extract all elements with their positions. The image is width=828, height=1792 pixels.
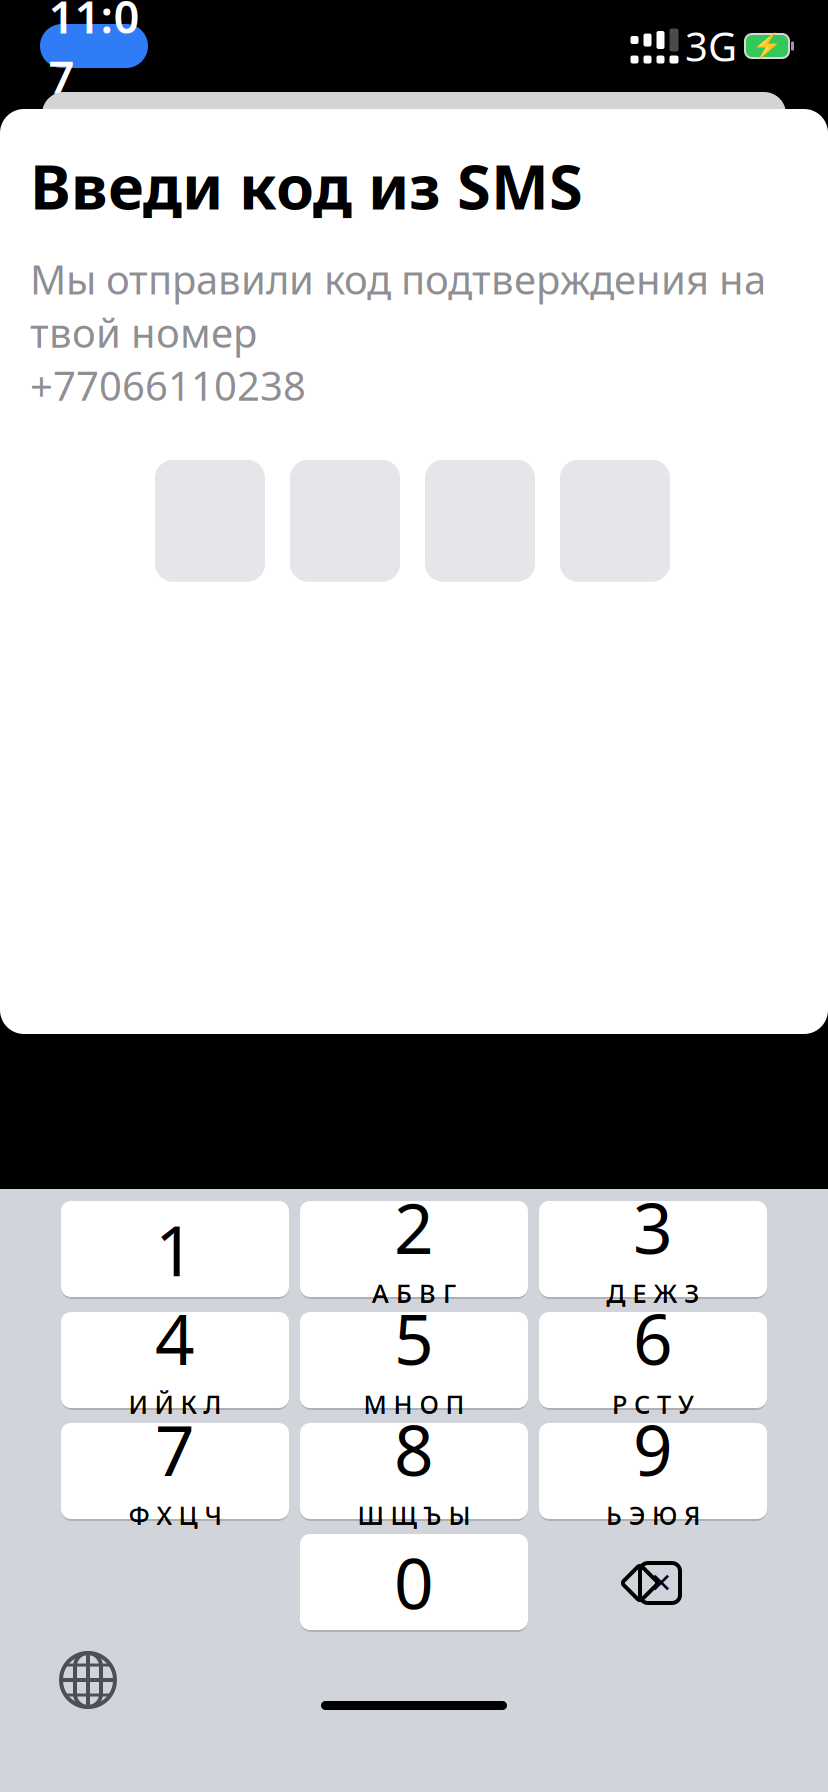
- staticText: М Н О П: [363, 1387, 464, 1421]
- staticText: 3: [633, 1181, 673, 1273]
- staticText: М Н О П: [363, 1387, 464, 1421]
- staticText: 3: [633, 1181, 673, 1273]
- staticText: 9: [633, 1403, 673, 1495]
- staticText: И Й К Л: [128, 1387, 221, 1421]
- staticText: 5: [394, 1292, 434, 1384]
- staticText: 2: [394, 1181, 434, 1273]
- button[interactable]: 6: [539, 1312, 767, 1410]
- button[interactable]: 0: [300, 1534, 528, 1632]
- staticText: 4: [155, 1292, 195, 1384]
- staticText: 5: [394, 1292, 434, 1384]
- staticText: 8: [394, 1403, 434, 1495]
- staticText: Ш Щ Ъ Ы: [357, 1498, 470, 1532]
- button[interactable]: Code digit: [290, 460, 400, 582]
- staticText: 4: [155, 1292, 195, 1384]
- button[interactable]: 1: [61, 1201, 289, 1299]
- button[interactable]: Delete: [539, 1534, 767, 1632]
- staticText: А Б В Г: [372, 1276, 456, 1310]
- staticText: Ь Э Ю Я: [606, 1498, 700, 1532]
- button[interactable]: 8: [300, 1423, 528, 1521]
- staticText: Ф Х Ц Ч: [128, 1498, 221, 1532]
- staticText: 9: [633, 1403, 673, 1495]
- staticText: Ш Щ Ъ Ы: [357, 1498, 470, 1532]
- staticText: ✕: [650, 1568, 672, 1598]
- button[interactable]: 9: [539, 1423, 767, 1521]
- staticText: Ф Х Ц Ч: [128, 1498, 221, 1532]
- button[interactable]: 3: [539, 1201, 767, 1299]
- staticText: Р С Т У: [612, 1387, 694, 1421]
- staticText: Ь Э Ю Я: [606, 1498, 700, 1532]
- staticText: ⚡: [752, 32, 782, 60]
- button[interactable]: Next keyboard: [40, 1632, 136, 1728]
- staticText: Р С Т У: [612, 1387, 694, 1421]
- staticText: 1: [155, 1203, 195, 1295]
- staticText: 7: [155, 1403, 195, 1495]
- staticText: Д Е Ж З: [606, 1276, 699, 1310]
- button[interactable]: 7: [61, 1423, 289, 1521]
- button[interactable]: Code digit: [560, 460, 670, 582]
- staticText: 6: [633, 1292, 673, 1384]
- staticText: 0: [394, 1536, 434, 1628]
- staticText: 3G: [685, 19, 737, 72]
- button[interactable]: Code digit: [155, 460, 265, 582]
- staticText: А Б В Г: [372, 1276, 456, 1310]
- staticText: И Й К Л: [128, 1387, 221, 1421]
- staticText: 0: [394, 1536, 434, 1628]
- staticText: 7: [155, 1403, 195, 1495]
- staticText: 11:07: [48, 0, 139, 106]
- staticText: Мы отправили код подтверждения на твой н…: [30, 252, 766, 412]
- staticText: 1: [155, 1203, 195, 1295]
- button[interactable]: Code digit: [425, 460, 535, 582]
- staticText: 2: [394, 1181, 434, 1273]
- button[interactable]: 2: [300, 1201, 528, 1299]
- staticText: Д Е Ж З: [606, 1276, 699, 1310]
- button[interactable]: 5: [300, 1312, 528, 1410]
- staticText: 6: [633, 1292, 673, 1384]
- button[interactable]: 4: [61, 1312, 289, 1410]
- staticText: 8: [394, 1403, 434, 1495]
- staticText: Введи код из SMS: [30, 145, 583, 226]
